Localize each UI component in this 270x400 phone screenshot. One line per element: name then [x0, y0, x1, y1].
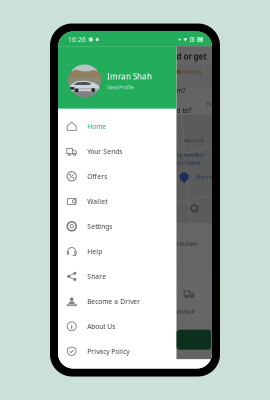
staticText: AYA PLAZA	[184, 138, 204, 143]
button[interactable]: Privacy Policy	[58, 339, 176, 364]
button[interactable]: Home	[58, 114, 176, 139]
button[interactable]: Wallet	[58, 189, 176, 214]
staticText: m?	[176, 86, 185, 95]
staticText: Settings	[87, 222, 112, 231]
button[interactable]: Your Sends	[58, 139, 176, 164]
staticText: Ye	[206, 100, 212, 107]
staticText: Become a Driver	[87, 297, 140, 306]
staticText: Share	[87, 272, 106, 281]
staticText: Imran Shah	[107, 71, 152, 82]
staticText: About Us	[87, 322, 115, 331]
staticText: Offers	[87, 172, 107, 181]
button[interactable]: View Profile	[107, 84, 134, 91]
staticText: od, Indore	[176, 159, 200, 166]
staticText: Help	[87, 247, 102, 256]
staticText: Home	[87, 122, 106, 131]
staticText: PICKUP	[176, 308, 194, 315]
staticText: Nothing	[182, 68, 201, 75]
button[interactable]: Help	[58, 239, 176, 264]
staticText: Wallet	[87, 197, 107, 206]
button[interactable]: Offers	[58, 164, 176, 189]
staticText: View Profile	[107, 84, 134, 91]
staticText: d or get	[176, 51, 206, 62]
button[interactable]: Become a Driver	[58, 289, 176, 314]
staticText: d to?	[176, 106, 191, 115]
staticText: Privacy Policy	[87, 347, 129, 356]
staticText: ne Jewellery	[176, 151, 204, 158]
staticText: t Station	[176, 240, 196, 247]
button[interactable]: About Us	[58, 314, 176, 339]
staticText: 16:26	[68, 35, 86, 44]
button[interactable]: Settings	[58, 214, 176, 239]
button[interactable]: Share	[58, 264, 176, 289]
staticText: Your Sends	[87, 147, 122, 156]
staticText: Shivsh	[196, 173, 212, 180]
